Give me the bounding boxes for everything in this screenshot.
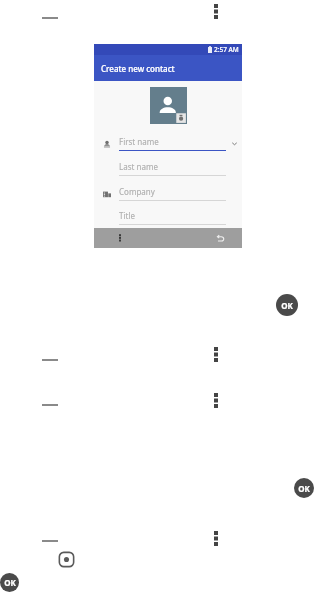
button[interactable]: More options bbox=[209, 528, 223, 548]
staticText: Company bbox=[119, 186, 155, 197]
staticText: 2:57 AM bbox=[214, 45, 239, 54]
button[interactable]: First name bbox=[94, 131, 242, 156]
staticText: First name bbox=[119, 136, 159, 147]
button[interactable]: More options bbox=[209, 1, 223, 21]
button[interactable]: Collapse bbox=[40, 401, 60, 409]
button[interactable]: Collapse bbox=[40, 14, 60, 22]
button[interactable]: More options bbox=[209, 390, 223, 410]
button[interactable]: Collapse bbox=[40, 356, 60, 364]
staticText: OK bbox=[4, 577, 16, 588]
button[interactable]: Last name bbox=[94, 156, 242, 181]
button[interactable]: OK bbox=[294, 478, 314, 498]
staticText: OK bbox=[281, 300, 293, 311]
staticText: Last name bbox=[119, 161, 158, 172]
button[interactable]: OK bbox=[276, 294, 298, 316]
staticText: Create new contact bbox=[101, 63, 175, 74]
button[interactable]: Collapse bbox=[40, 537, 60, 545]
button[interactable]: Camera bbox=[56, 549, 76, 569]
button[interactable]: More options bbox=[112, 230, 128, 246]
button[interactable]: Add contact photo bbox=[150, 87, 187, 124]
button[interactable]: More options bbox=[209, 344, 223, 364]
staticText: Title bbox=[119, 210, 135, 221]
staticText: OK bbox=[298, 483, 310, 494]
button[interactable]: Create new contact bbox=[94, 55, 242, 81]
button[interactable]: OK bbox=[0, 573, 19, 592]
button[interactable]: Title bbox=[94, 206, 242, 228]
button[interactable]: Back bbox=[212, 230, 228, 246]
button[interactable]: Company bbox=[94, 181, 242, 206]
